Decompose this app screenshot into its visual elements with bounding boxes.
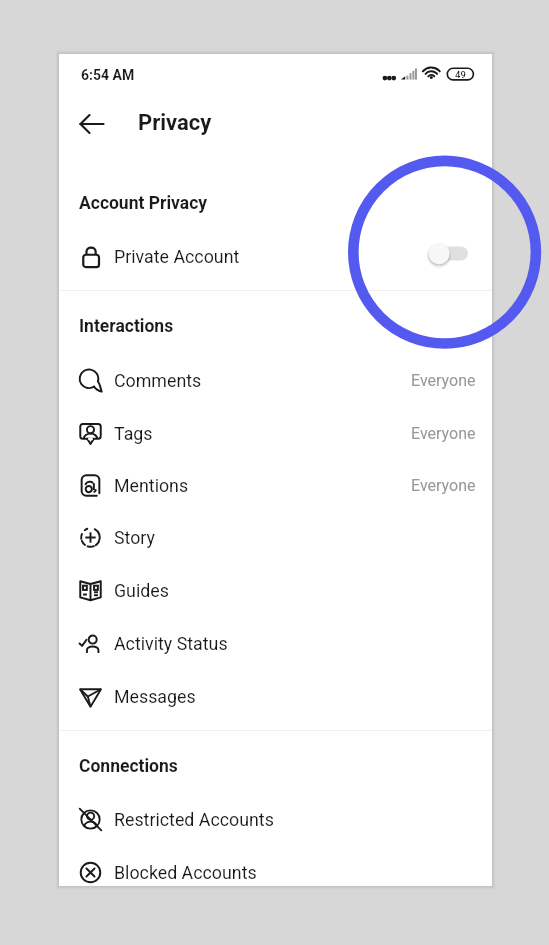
staticText: Activity Status <box>114 633 228 654</box>
staticText: Comments <box>114 370 202 391</box>
staticText: Story <box>114 527 155 548</box>
button[interactable]: Guides <box>59 564 492 616</box>
staticText: Blocked Accounts <box>114 862 257 883</box>
staticText: Everyone <box>411 476 476 495</box>
button[interactable]: Messages <box>59 670 492 722</box>
button[interactable]: Comments <box>59 354 492 406</box>
staticText: 49 <box>455 69 466 80</box>
staticText: Everyone <box>411 371 476 390</box>
button[interactable]: Restricted Accounts <box>59 793 492 845</box>
button[interactable]: Mentions <box>59 459 492 511</box>
button[interactable]: Private Account toggle <box>432 241 476 271</box>
staticText: Guides <box>114 580 169 601</box>
staticText: Tags <box>114 423 153 444</box>
staticText: Interactions <box>79 316 174 337</box>
staticText: Everyone <box>411 424 476 443</box>
staticText: Privacy <box>138 110 212 136</box>
staticText: Private Account <box>114 246 240 267</box>
staticText: Connections <box>79 756 178 777</box>
staticText: Restricted Accounts <box>114 809 274 830</box>
staticText: 6:54 AM <box>81 67 135 83</box>
button[interactable]: Private Account <box>59 230 492 282</box>
button[interactable]: Activity Status <box>59 617 492 669</box>
staticText: Mentions <box>114 475 189 496</box>
staticText: Messages <box>114 686 196 707</box>
button[interactable]: Story <box>59 511 492 563</box>
staticText: Account Privacy <box>79 193 208 214</box>
button[interactable]: Tags <box>59 407 492 459</box>
button[interactable]: Blocked Accounts <box>59 846 492 898</box>
button[interactable]: Back <box>72 104 112 144</box>
